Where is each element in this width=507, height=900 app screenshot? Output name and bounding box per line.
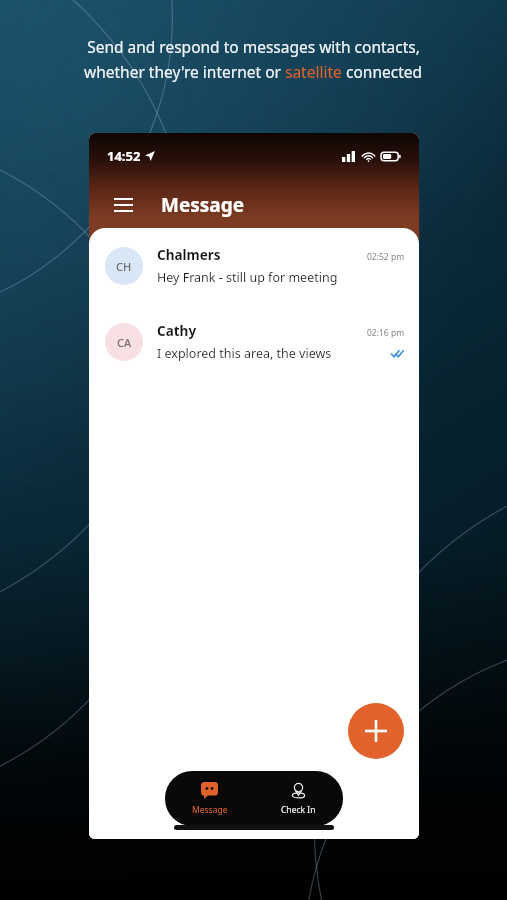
staticText: Check In: [281, 804, 316, 816]
staticText: CA: [117, 335, 132, 350]
button[interactable]: CA: [89, 314, 419, 370]
staticText: Message: [161, 192, 245, 218]
button[interactable]: New message: [348, 703, 404, 759]
staticText: whether they're internet or: [84, 61, 285, 82]
staticText: 14:52: [107, 147, 141, 165]
staticText: Chalmers: [157, 246, 221, 264]
staticText: Hey Frank - still up for meeting later? …: [157, 269, 361, 286]
staticText: I explored this area, the views were inc…: [157, 345, 361, 362]
staticText: satellite: [285, 61, 342, 82]
staticText: connected: [342, 61, 423, 82]
staticText: 02:16 pm: [367, 327, 405, 339]
staticText: Message: [192, 804, 228, 816]
staticText: Send and respond to messages with contac…: [87, 36, 420, 57]
staticText: CH: [116, 259, 132, 274]
button[interactable]: Check In: [254, 774, 343, 824]
staticText: 02:52 pm: [367, 251, 405, 263]
button[interactable]: Message: [165, 774, 254, 824]
button[interactable]: CH: [89, 238, 419, 294]
button[interactable]: Menu: [107, 189, 139, 221]
staticText: Cathy: [157, 322, 197, 340]
